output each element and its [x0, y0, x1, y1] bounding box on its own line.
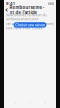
- staticText: cet article. Le remboursement sera trait…: [5, 22, 53, 30]
- button[interactable]: Back: [5, 8, 7, 12]
- staticText: Sélectionnez la raison du remboursement …: [5, 13, 46, 21]
- staticText: Choisir une raison: [15, 23, 45, 27]
- staticText: ▮▮▮: [48, 2, 54, 5]
- button[interactable]: Choisir une raison: [13, 22, 46, 28]
- staticText: 9:41: [6, 1, 15, 6]
- staticText: Remboursement de l'article: [9, 5, 44, 15]
